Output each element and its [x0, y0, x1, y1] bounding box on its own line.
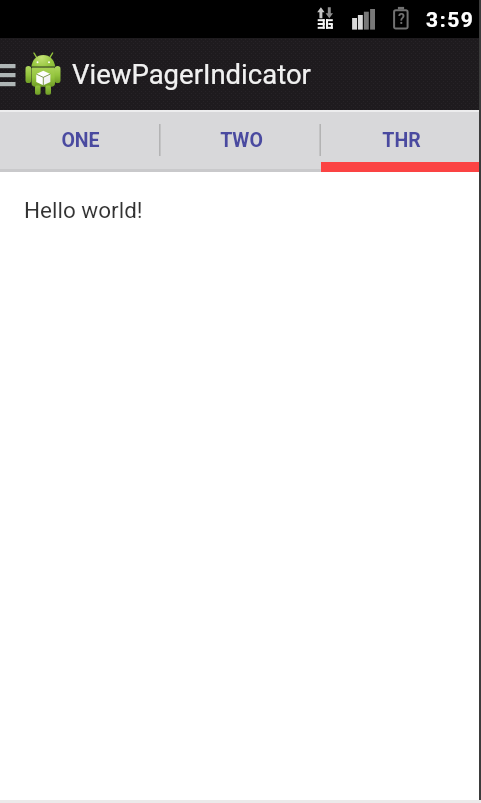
staticText: Hello world!	[24, 197, 143, 223]
button[interactable]: Menu	[0, 38, 18, 110]
button[interactable]: TWO	[161, 110, 321, 172]
staticText: ?	[398, 11, 405, 27]
staticText: THR	[382, 129, 421, 152]
button[interactable]: ViewPagerIndicator	[18, 38, 293, 110]
staticText: TWO	[220, 129, 263, 152]
button[interactable]: THR	[321, 110, 481, 172]
button[interactable]: ONE	[0, 110, 161, 172]
staticText: ONE	[61, 129, 100, 152]
staticText: ViewPagerIndicator	[72, 58, 311, 90]
staticText: 3:59	[426, 8, 475, 33]
